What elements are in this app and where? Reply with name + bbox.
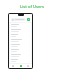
button[interactable]: Add user <box>27 18 30 21</box>
button[interactable]: Open <box>10 23 31 28</box>
button[interactable]: Home <box>10 64 16 68</box>
button[interactable]: Open <box>10 33 31 38</box>
button[interactable]: List of Users <box>0 4 64 9</box>
button[interactable]: Open <box>10 38 31 43</box>
button[interactable]: Open <box>10 48 31 53</box>
button[interactable]: Users <box>18 64 24 68</box>
button[interactable]: Open <box>10 58 31 63</box>
button[interactable]: Search <box>11 18 26 21</box>
button[interactable]: Open <box>10 28 31 33</box>
button[interactable]: Open <box>10 43 31 48</box>
button[interactable]: Settings <box>25 64 31 68</box>
staticText: List of Users <box>20 4 44 9</box>
button[interactable]: Open <box>10 53 31 58</box>
